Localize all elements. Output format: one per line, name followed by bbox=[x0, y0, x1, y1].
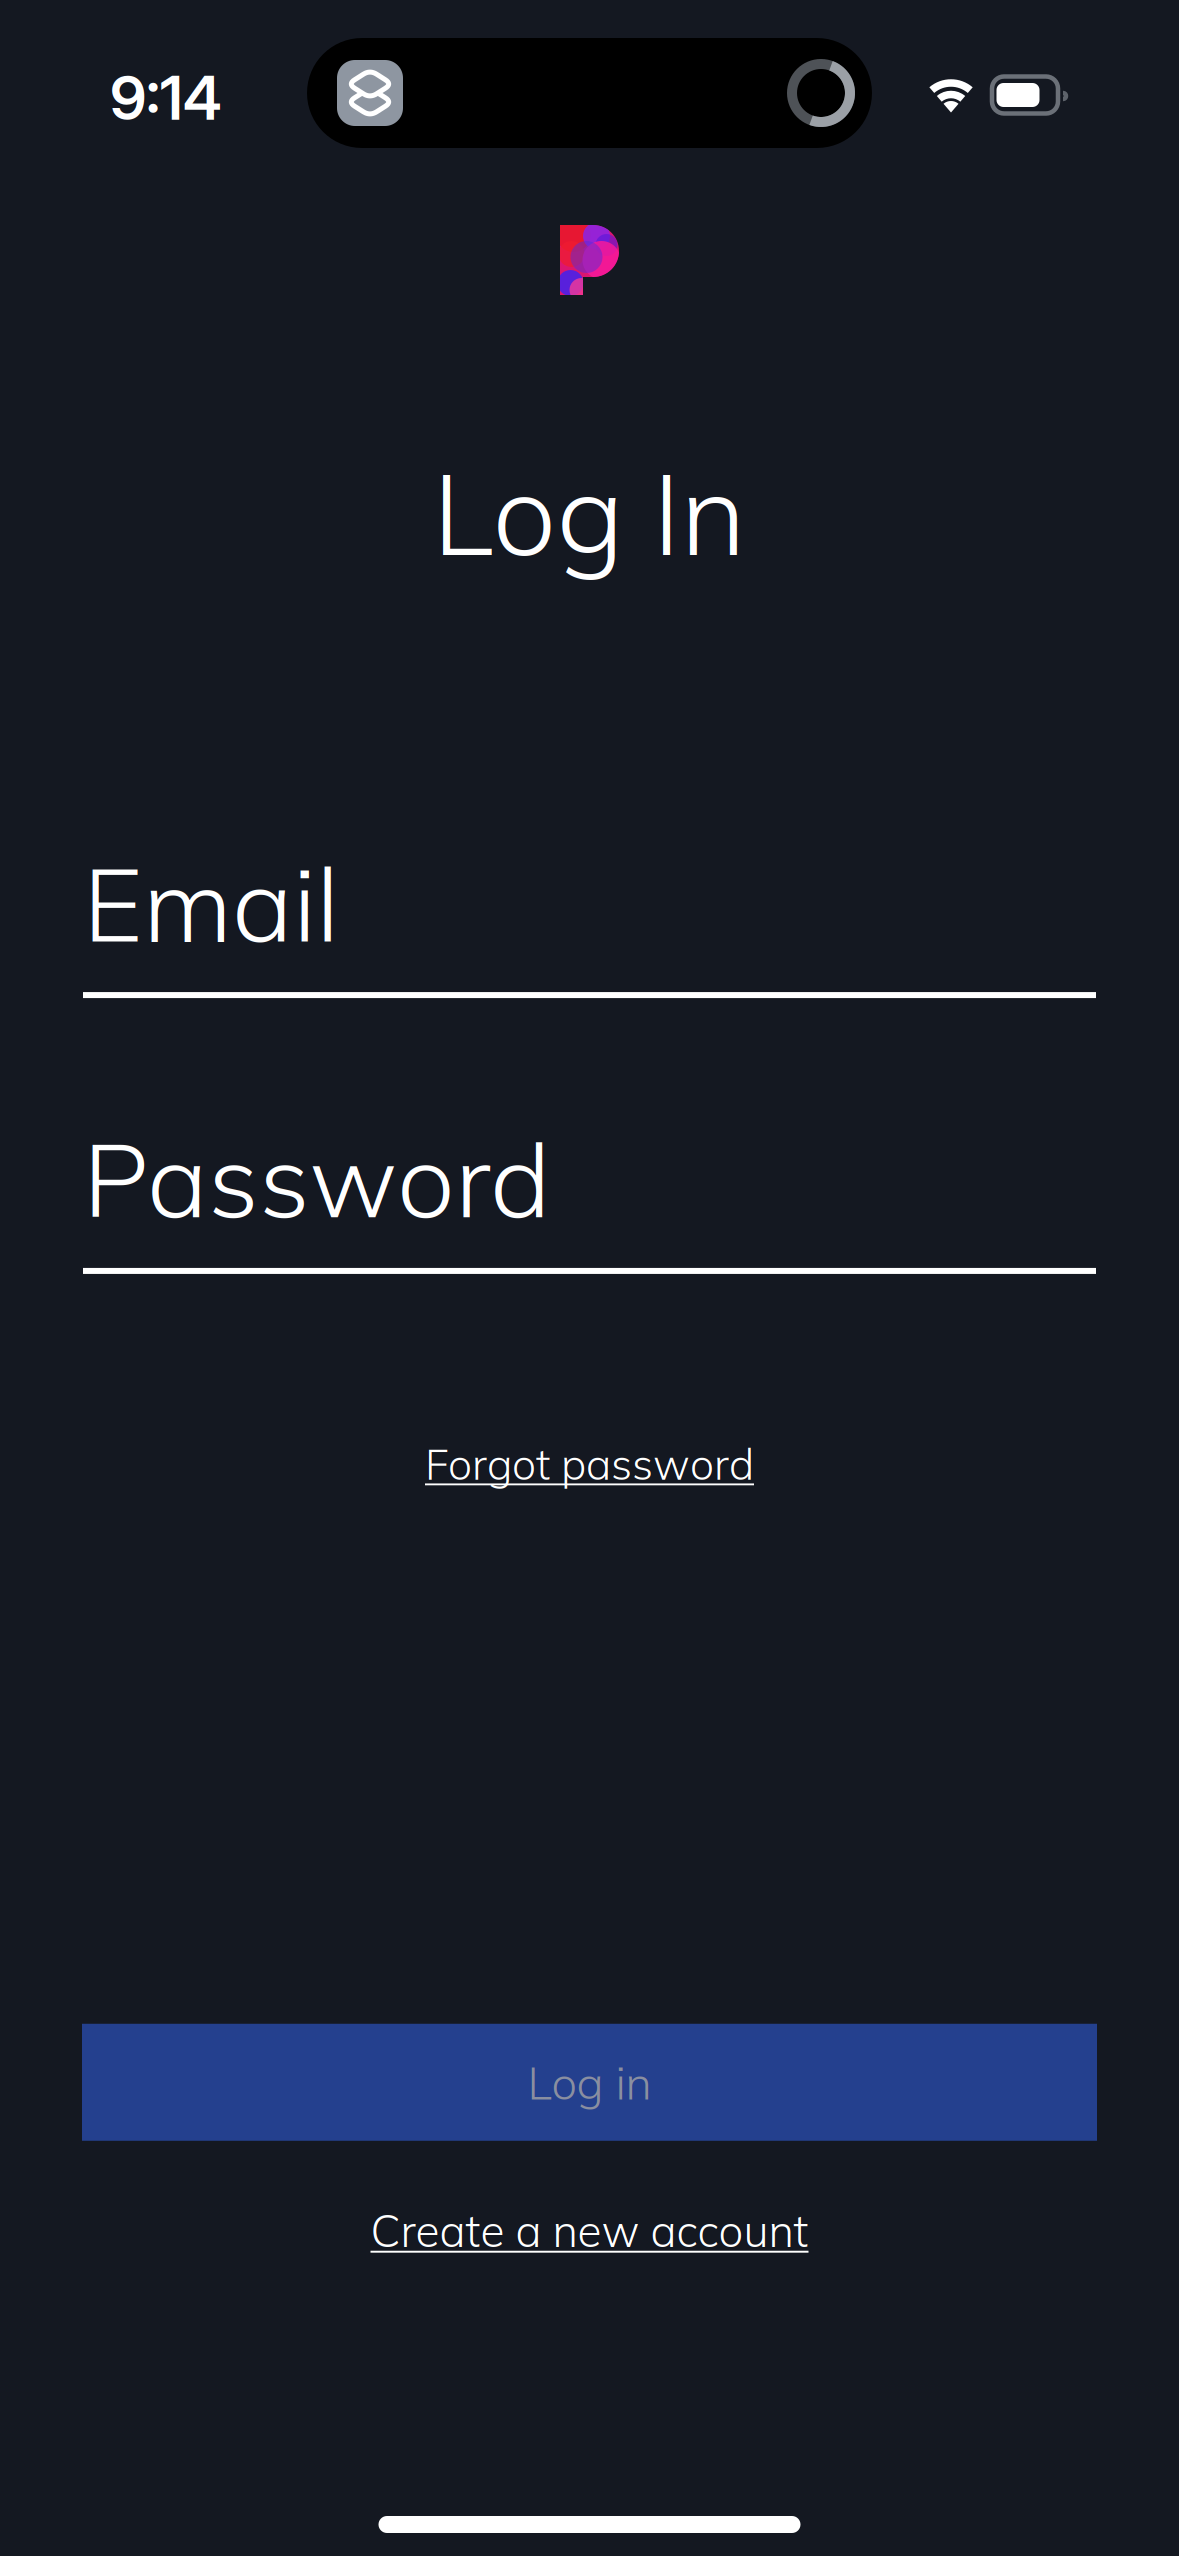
button[interactable]: Email bbox=[0, 838, 1179, 998]
staticText: Create a new account bbox=[370, 2203, 808, 2258]
button[interactable]: Password bbox=[0, 1114, 1179, 1274]
staticText: 9:14 bbox=[110, 62, 222, 134]
staticText: Forgot password bbox=[425, 1437, 754, 1490]
staticText: Password bbox=[83, 1114, 551, 1243]
button[interactable]: Create a new account bbox=[370, 2203, 808, 2258]
staticText: Log in bbox=[527, 2054, 651, 2111]
button[interactable]: Log in bbox=[82, 2024, 1097, 2141]
staticText: Email bbox=[83, 838, 339, 967]
staticText: Log In bbox=[432, 441, 746, 583]
button[interactable]: Forgot password bbox=[425, 1437, 754, 1490]
